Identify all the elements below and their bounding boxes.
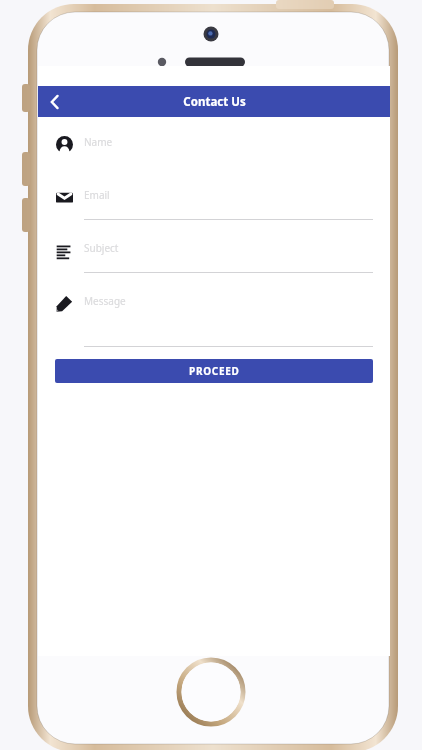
staticText: Contact Us (183, 94, 246, 110)
button[interactable]: Email (56, 188, 373, 220)
button[interactable]: Message (56, 294, 373, 347)
button[interactable]: Back (38, 86, 72, 117)
button[interactable]: PROCEED (55, 359, 373, 383)
staticText: Name (84, 135, 113, 149)
staticText: Subject (84, 241, 119, 255)
button[interactable]: Subject (56, 241, 373, 273)
staticText: Message (84, 294, 126, 308)
staticText: PROCEED (189, 364, 240, 378)
staticText: Email (84, 188, 110, 202)
button[interactable]: Name (56, 135, 373, 167)
